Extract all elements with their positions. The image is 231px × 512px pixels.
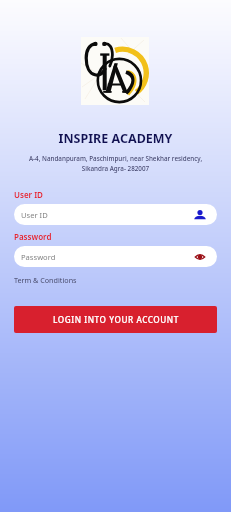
button[interactable]: User ID xyxy=(14,204,217,225)
button[interactable]: User xyxy=(194,209,206,221)
staticText: INSPIRE ACADEMY xyxy=(0,130,231,147)
staticText: User ID xyxy=(14,189,43,200)
staticText: LOGIN INTO YOUR ACCOUNT xyxy=(53,314,179,325)
staticText: User ID xyxy=(21,210,48,220)
button[interactable]: Show password xyxy=(194,251,206,263)
staticText: Term & Conditions xyxy=(14,275,77,285)
staticText: Password xyxy=(14,231,52,242)
button[interactable]: Password xyxy=(14,246,217,267)
staticText: A-4, Nandanpuram, Paschimpuri, near Shek… xyxy=(10,154,221,173)
staticText: Password xyxy=(21,252,56,262)
button[interactable]: LOGIN INTO YOUR ACCOUNT xyxy=(14,306,217,333)
button[interactable]: Term & Conditions xyxy=(14,275,77,285)
